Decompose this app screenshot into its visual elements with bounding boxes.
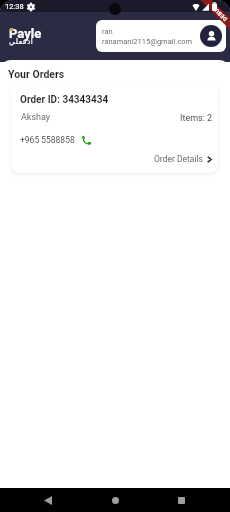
button[interactable]: Account: [200, 25, 222, 47]
staticText: ranamani2115@gmail.com: [102, 37, 193, 46]
staticText: Akshay: [21, 112, 51, 123]
button[interactable]: Order ID: 34343434: [11, 85, 218, 173]
staticText: ran: [102, 27, 113, 36]
staticText: Payle: [9, 26, 42, 41]
staticText: Items: 2: [180, 113, 213, 124]
staticText: DEBUG: [210, 4, 228, 22]
button[interactable]: Call: [81, 135, 91, 145]
button[interactable]: Order Details: [154, 154, 213, 164]
staticText: Your Orders: [8, 68, 65, 80]
button[interactable]: Home: [103, 488, 127, 512]
staticText: Order Details: [154, 154, 203, 164]
button[interactable]: ran: [96, 20, 226, 52]
button[interactable]: Back: [36, 488, 60, 512]
staticText: 12:38: [5, 2, 24, 11]
staticText: +965 5588858: [20, 135, 75, 145]
staticText: Order ID: 34343434: [20, 94, 109, 106]
button[interactable]: Recents: [169, 488, 193, 512]
staticText: ادفعلي: [9, 37, 34, 46]
